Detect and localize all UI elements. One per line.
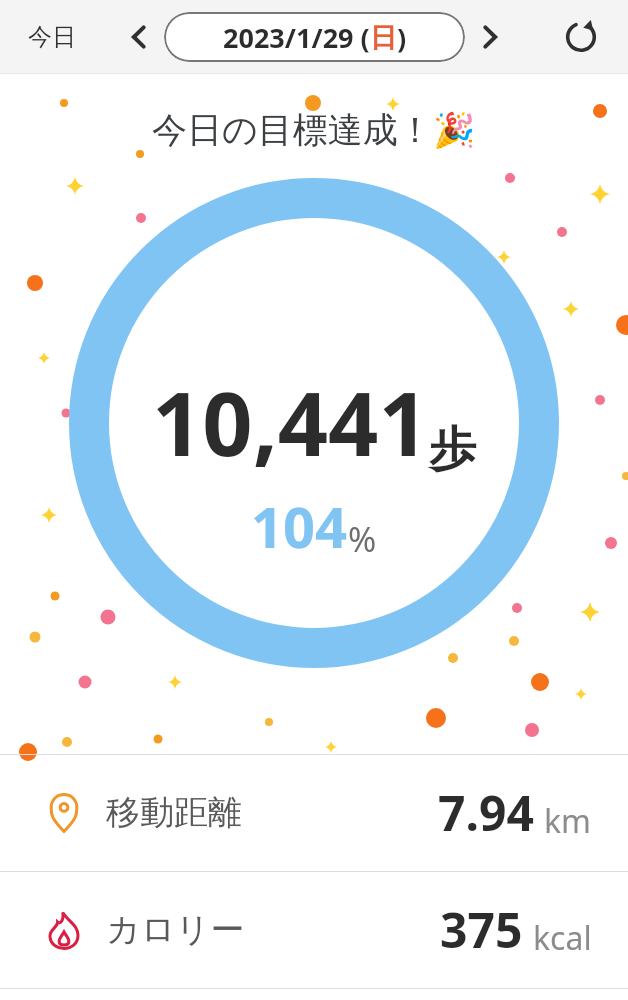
staticText: 今日 xyxy=(28,22,76,52)
button[interactable]: Refresh xyxy=(556,0,606,74)
staticText: 10,441 xyxy=(152,362,429,482)
staticText: % xyxy=(348,516,377,562)
staticText: 歩 xyxy=(429,420,476,479)
staticText: 104 xyxy=(251,488,348,564)
staticText: 今日の目標達成！ xyxy=(152,108,433,152)
staticText: 移動距離 xyxy=(106,791,242,834)
staticText: カロリー xyxy=(106,908,245,951)
button[interactable]: 2023/1/29 ( xyxy=(164,12,465,62)
staticText: kcal xyxy=(533,916,592,960)
button[interactable]: Previous day xyxy=(121,0,157,74)
staticText: 🎉 xyxy=(433,110,476,150)
staticText: 日 xyxy=(370,21,397,55)
staticText: km xyxy=(544,799,592,843)
staticText: 7.94 xyxy=(438,780,534,845)
button[interactable]: カロリー xyxy=(0,871,628,988)
staticText: 2023/1/29 ( xyxy=(223,19,370,56)
staticText: 375 xyxy=(440,897,523,962)
button[interactable]: Next day xyxy=(472,0,508,74)
staticText: ) xyxy=(397,19,407,56)
button[interactable]: 今日 xyxy=(0,0,628,74)
button[interactable]: 移動距離 xyxy=(0,754,628,871)
